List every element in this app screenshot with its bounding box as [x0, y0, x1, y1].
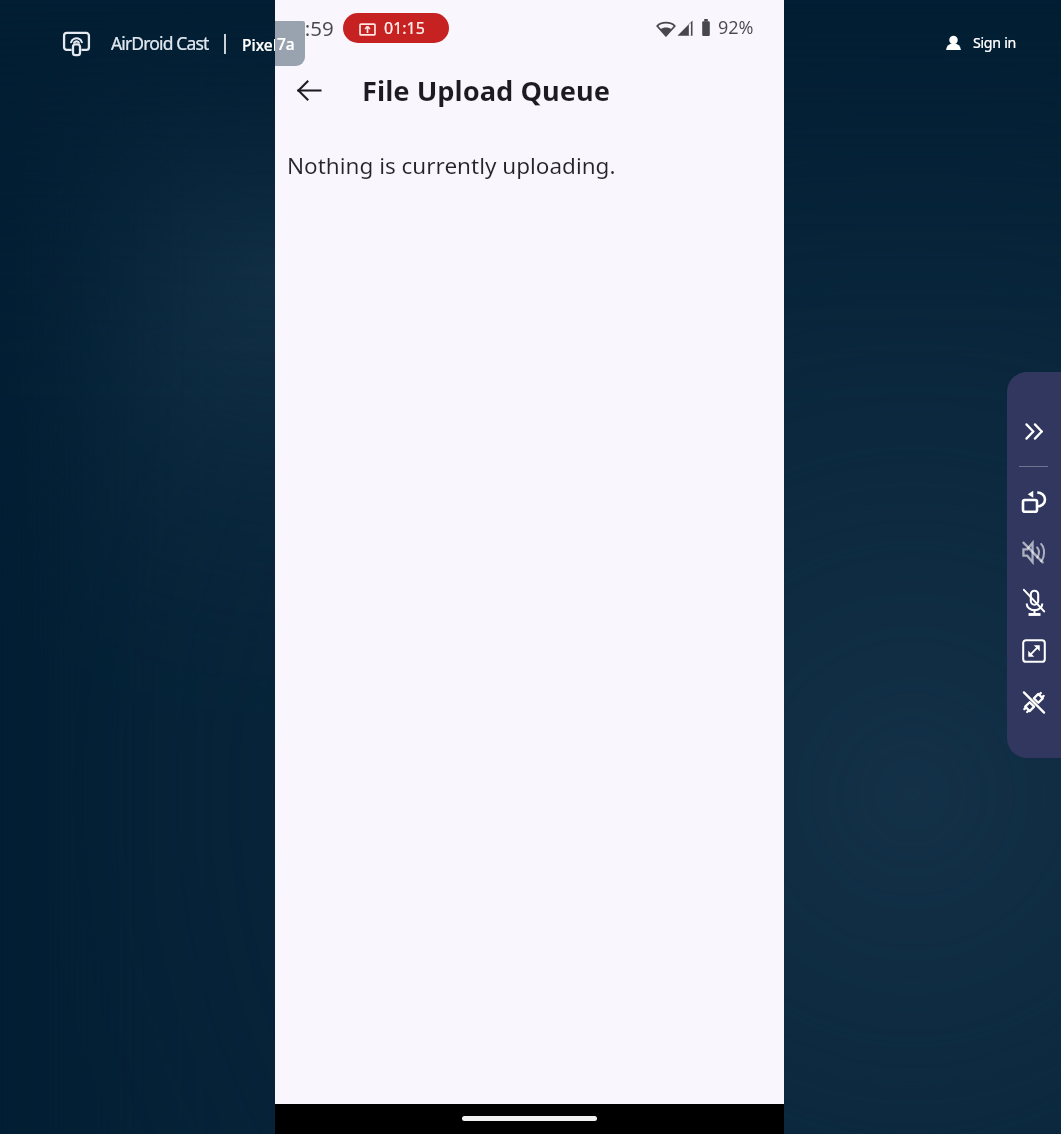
button[interactable]: Full screen: [1011, 628, 1057, 674]
staticText: 92%: [718, 15, 754, 40]
button[interactable]: Back: [283, 64, 335, 116]
button[interactable]: Pixel 7a: [235, 22, 305, 66]
staticText: Nothing is currently uploading.: [287, 150, 616, 181]
staticText: Pixel 7a: [242, 34, 299, 55]
button[interactable]: Mute microphone: [1011, 580, 1057, 626]
button[interactable]: 7a: [275, 21, 305, 66]
staticText: AirDroid Cast: [111, 31, 209, 55]
button[interactable]: Rotate screen: [1011, 479, 1057, 525]
button[interactable]: Collapse toolbar: [1014, 411, 1054, 451]
button[interactable]: Sign in: [941, 30, 1020, 55]
staticText: 01:15: [384, 17, 425, 39]
staticText: 2:59: [293, 14, 334, 42]
button[interactable]: Disconnect: [1011, 679, 1057, 725]
button[interactable]: Mute sound: [1011, 529, 1057, 575]
staticText: 7a: [277, 33, 295, 54]
staticText: File Upload Queue: [362, 72, 611, 109]
button[interactable]: Screen recording 01:15: [343, 13, 449, 43]
button[interactable]: AirDroid Cast: [63, 31, 209, 55]
staticText: Sign in: [973, 33, 1016, 52]
